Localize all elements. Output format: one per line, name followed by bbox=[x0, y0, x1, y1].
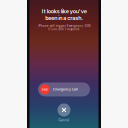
staticText: iPhone will trigger Emergency SOS if you… bbox=[37, 24, 90, 31]
staticText: It looks like you've been in a crash. bbox=[41, 8, 86, 21]
button[interactable]: SOS bbox=[38, 82, 90, 96]
staticText: Cancel bbox=[58, 118, 69, 122]
staticText: SOS bbox=[42, 88, 48, 91]
button[interactable]: Cancel bbox=[57, 103, 70, 122]
staticText: Emergency Call bbox=[53, 87, 78, 91]
